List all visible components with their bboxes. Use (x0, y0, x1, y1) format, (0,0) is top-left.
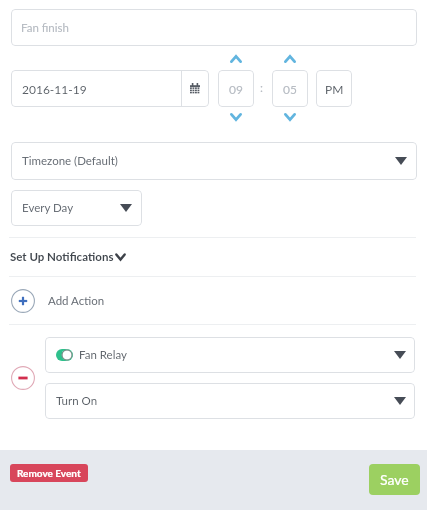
staticText: Every Day (22, 201, 74, 215)
staticText: Fan Relay (79, 348, 127, 362)
staticText: PM (325, 82, 344, 96)
staticText: 2016-11-19 (22, 82, 87, 96)
button[interactable]: Turn On (45, 383, 415, 419)
button[interactable]: Timezone (Default) (11, 142, 417, 180)
staticText: Turn On (56, 394, 98, 408)
staticText: 05 (283, 82, 297, 96)
button[interactable]: Fan Relay (45, 337, 415, 373)
staticText: Add Action (48, 294, 105, 308)
button[interactable]: Increase hour (218, 54, 253, 64)
button[interactable]: 2016-11-19 (11, 70, 209, 107)
button[interactable]: PM (316, 70, 352, 107)
staticText: Remove Event (17, 467, 81, 479)
button[interactable]: Remove action (11, 366, 35, 390)
button[interactable]: Every Day (11, 190, 142, 226)
button[interactable]: Decrease hour (218, 112, 253, 122)
staticText: Timezone (Default) (22, 154, 118, 168)
button[interactable]: Decrease minute (272, 112, 307, 122)
button[interactable]: Set Up Notifications (10, 246, 126, 267)
staticText: 09 (229, 82, 243, 96)
button[interactable]: Save (369, 464, 420, 495)
button[interactable]: Increase minute (272, 54, 307, 64)
staticText: : (260, 80, 264, 94)
staticText: Save (380, 471, 409, 488)
button[interactable]: Add Action (11, 289, 105, 313)
staticText: Fan finish (21, 21, 69, 35)
staticText: Set Up Notifications (10, 250, 114, 264)
button[interactable]: Remove Event (10, 464, 88, 482)
button[interactable]: Fan finish (11, 9, 417, 46)
